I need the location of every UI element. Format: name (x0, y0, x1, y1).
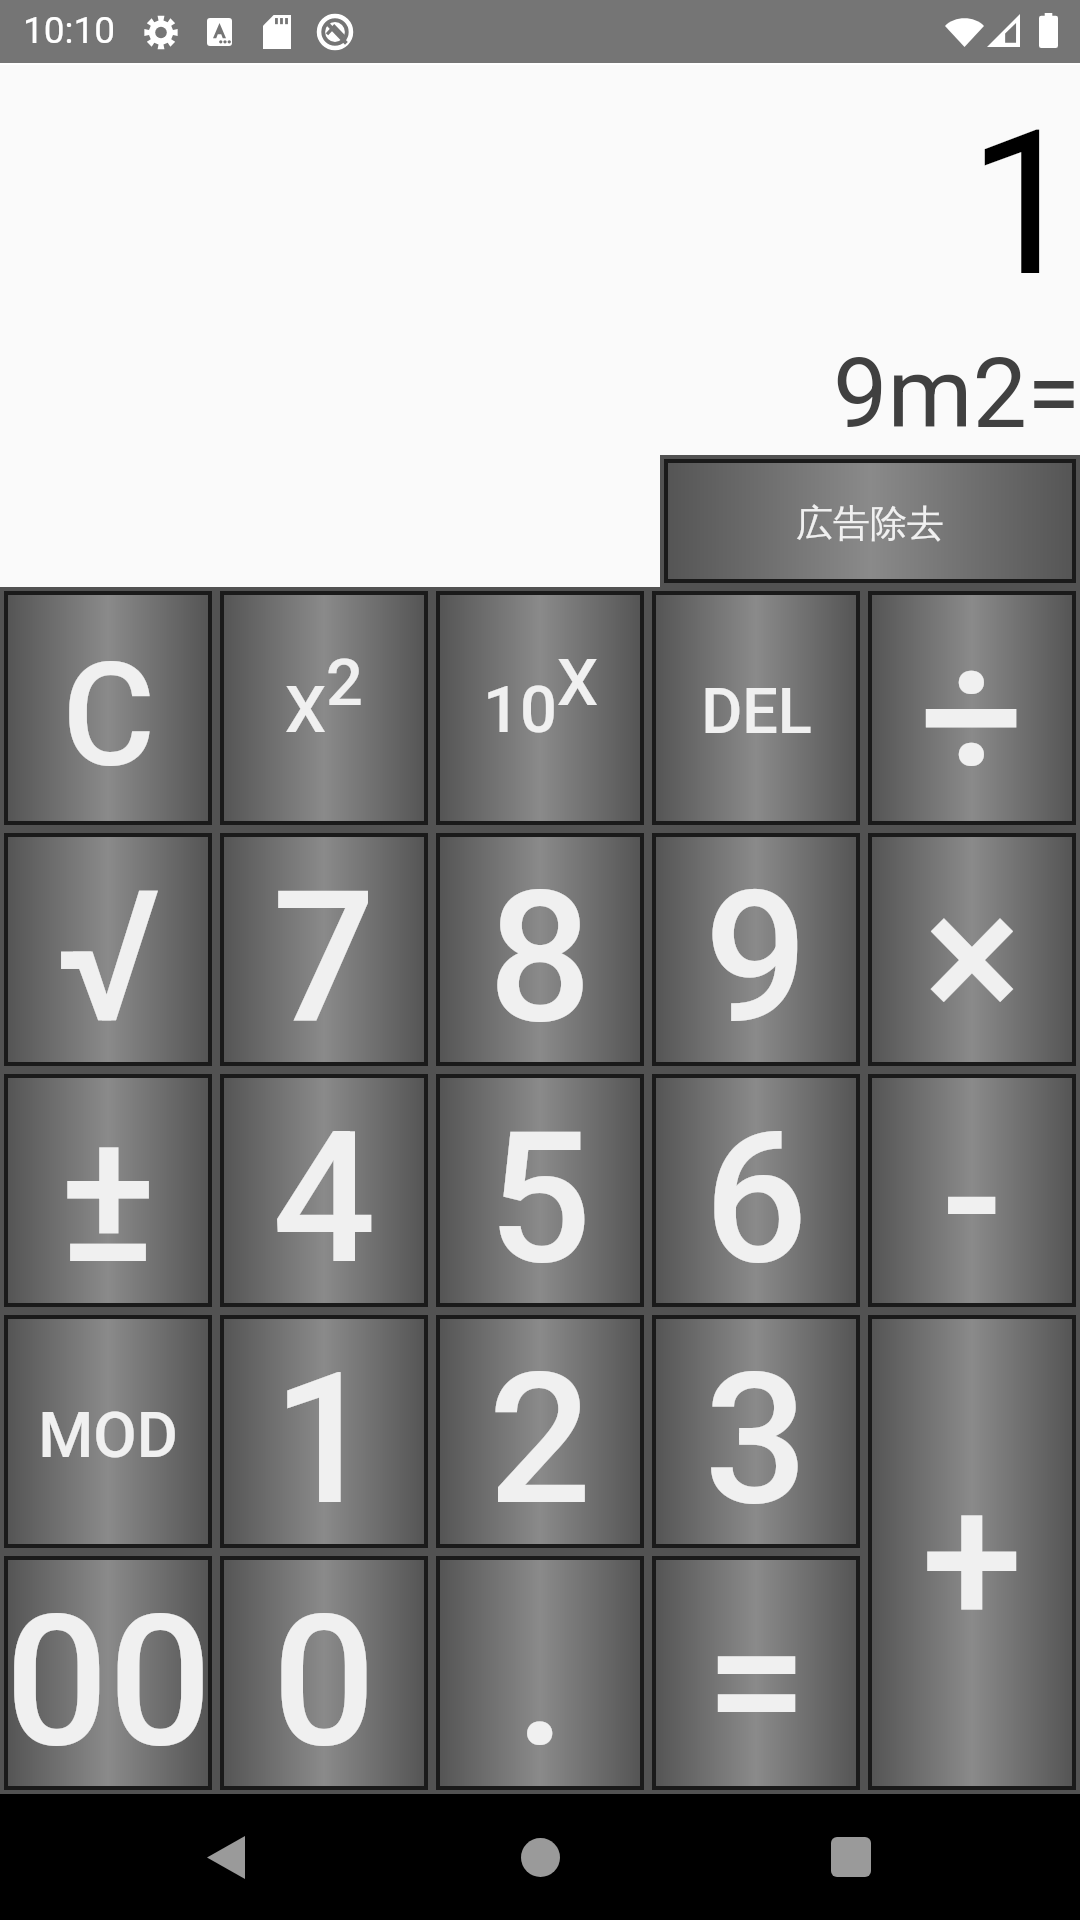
button[interactable]: = (656, 1560, 856, 1786)
button[interactable]: 6 (656, 1078, 856, 1303)
button[interactable]: Home (500, 1817, 580, 1897)
button[interactable]: 00 (8, 1560, 208, 1786)
button[interactable]: 7 (224, 837, 424, 1062)
button[interactable]: 10X (440, 595, 640, 821)
button[interactable]: MOD (8, 1319, 208, 1544)
staticText: 8 (488, 851, 592, 1064)
staticText: - (941, 1092, 1003, 1305)
staticText: 1 (272, 1333, 376, 1546)
staticText: 2 (488, 1333, 592, 1546)
staticText: MOD (38, 1399, 178, 1473)
staticText: . (515, 1575, 566, 1788)
staticText: 9m2= (833, 337, 1080, 451)
staticText: 4 (272, 1092, 376, 1305)
staticText: 0 (272, 1575, 376, 1788)
staticText: 00 (5, 1575, 212, 1788)
button[interactable]: Back (186, 1817, 266, 1897)
button[interactable]: 8 (440, 837, 640, 1062)
staticText: √ (56, 851, 161, 1064)
button[interactable]: DEL (656, 595, 856, 821)
button[interactable]: 広告除去 (668, 463, 1072, 579)
button[interactable]: ÷ (872, 595, 1072, 821)
button[interactable]: - (872, 1078, 1072, 1303)
button[interactable]: 5 (440, 1078, 640, 1303)
button[interactable]: ± (8, 1078, 208, 1303)
staticText: 5 (488, 1092, 592, 1305)
button[interactable]: √ (8, 837, 208, 1062)
staticText: 1 (968, 87, 1080, 321)
button[interactable]: . (440, 1560, 640, 1786)
staticText: ± (59, 1092, 157, 1305)
button[interactable]: × (872, 837, 1072, 1062)
staticText: 3 (704, 1333, 808, 1546)
button[interactable]: 9 (656, 837, 856, 1062)
staticText: × (924, 851, 1021, 1064)
button[interactable]: 4 (224, 1078, 424, 1303)
button[interactable]: + (872, 1319, 1072, 1786)
button[interactable]: C (8, 595, 208, 821)
button[interactable]: X2 (224, 595, 424, 821)
button[interactable]: Recent apps (811, 1817, 891, 1897)
button[interactable]: 3 (656, 1319, 856, 1544)
button[interactable]: 2 (440, 1319, 640, 1544)
staticText: DEL (701, 675, 812, 749)
staticText: 10:10 (23, 9, 116, 52)
button[interactable]: 1 (224, 1319, 424, 1544)
staticText: 10X (483, 645, 598, 748)
staticText: C (62, 633, 155, 799)
staticText: X2 (285, 645, 363, 748)
button[interactable]: 0 (224, 1560, 424, 1786)
staticText: ÷ (920, 610, 1024, 823)
staticText: 7 (272, 851, 376, 1064)
staticText: 9 (704, 851, 808, 1064)
staticText: + (921, 1454, 1023, 1667)
staticText: 6 (704, 1092, 808, 1305)
staticText: 広告除去 (796, 500, 944, 547)
staticText: = (705, 1575, 808, 1788)
